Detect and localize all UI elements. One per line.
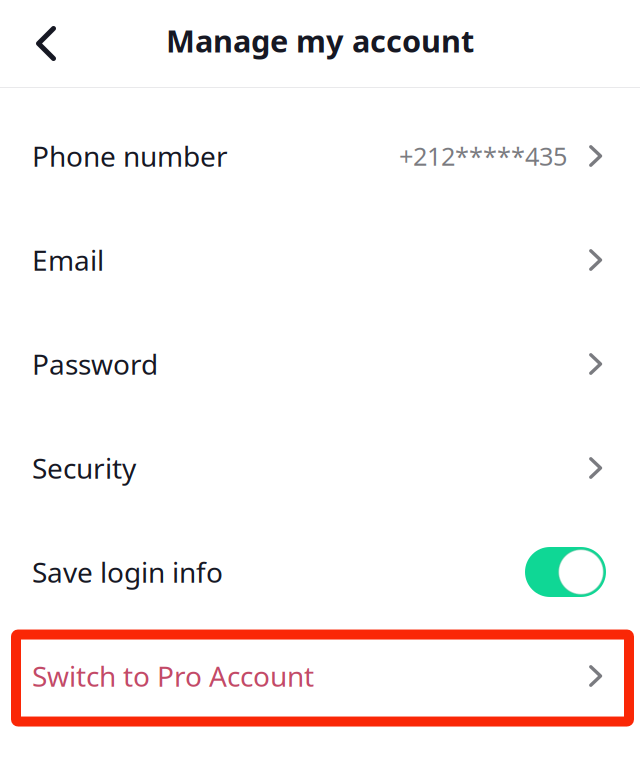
- staticText: Manage my account: [166, 20, 474, 61]
- button[interactable]: Back: [0, 0, 92, 87]
- staticText: Switch to Pro Account: [32, 657, 314, 695]
- button[interactable]: Phone number: [0, 104, 640, 208]
- button[interactable]: Save login info: [0, 520, 640, 624]
- button[interactable]: Switch to Pro Account: [0, 624, 640, 728]
- staticText: +212*****435: [399, 139, 567, 173]
- button[interactable]: Password: [0, 312, 640, 416]
- staticText: Phone number: [32, 137, 228, 175]
- staticText: Security: [32, 449, 136, 487]
- button[interactable]: Email: [0, 208, 640, 312]
- staticText: Email: [32, 241, 104, 279]
- staticText: Save login info: [32, 553, 223, 591]
- button[interactable]: Security: [0, 416, 640, 520]
- staticText: Password: [32, 345, 158, 383]
